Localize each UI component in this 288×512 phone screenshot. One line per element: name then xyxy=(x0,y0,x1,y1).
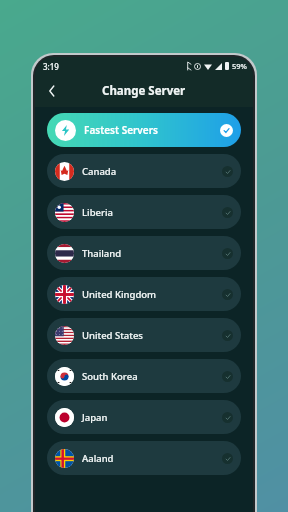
button[interactable]: Back xyxy=(39,78,65,104)
staticText: Japan xyxy=(82,411,108,424)
staticText: South Korea xyxy=(82,370,138,383)
staticText: Canada xyxy=(82,165,117,178)
button[interactable]: South Korea xyxy=(47,359,241,393)
staticText: Aaland xyxy=(82,452,114,465)
button[interactable]: Fastest Servers xyxy=(47,113,241,147)
staticText: 3:19 xyxy=(43,61,59,72)
staticText: 59% xyxy=(232,61,247,71)
staticText: Thailand xyxy=(82,247,122,260)
button[interactable]: Liberia xyxy=(47,195,241,229)
button[interactable]: United States xyxy=(47,318,241,352)
button[interactable]: Japan xyxy=(47,400,241,434)
staticText: Change Server xyxy=(102,83,186,99)
staticText: United States xyxy=(82,329,143,342)
button[interactable]: Canada xyxy=(47,154,241,188)
button[interactable]: Thailand xyxy=(47,236,241,270)
staticText: Liberia xyxy=(82,206,113,219)
button[interactable]: Aaland xyxy=(47,441,241,475)
staticText: United Kingdom xyxy=(82,288,157,301)
button[interactable]: United Kingdom xyxy=(47,277,241,311)
staticText: Fastest Servers xyxy=(84,123,158,137)
